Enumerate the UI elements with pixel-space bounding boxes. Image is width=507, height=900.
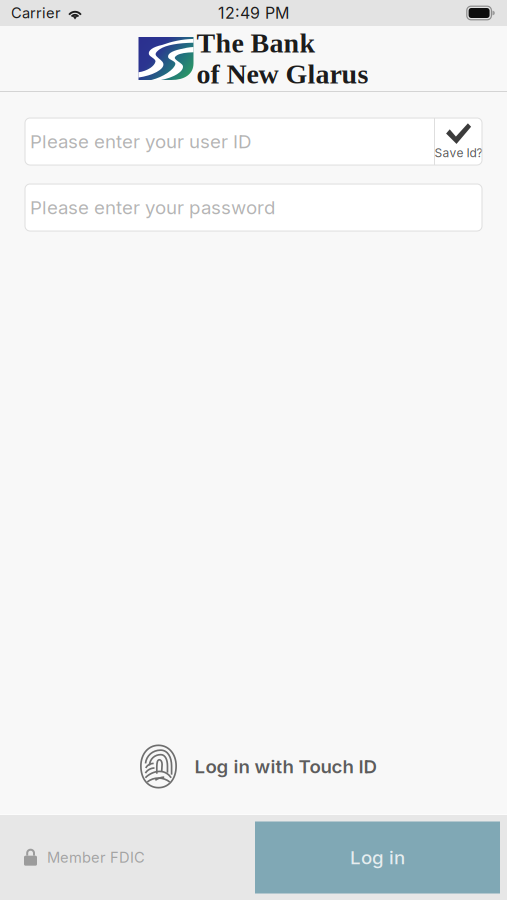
- staticText: Please enter your password: [30, 196, 275, 219]
- button[interactable]: Log in: [255, 821, 500, 893]
- staticText: of New Glarus: [196, 58, 368, 89]
- staticText: The Bank: [196, 27, 315, 58]
- staticText: 12:49 PM: [218, 3, 289, 23]
- button[interactable]: Log in with Touch ID: [130, 738, 376, 795]
- staticText: Save Id?: [434, 146, 482, 160]
- staticText: Log in: [350, 846, 405, 869]
- staticText: Please enter your user ID: [30, 130, 251, 153]
- staticText: Member FDIC: [47, 849, 145, 866]
- staticText: Log in with Touch ID: [194, 755, 376, 778]
- button[interactable]: Save Id?: [435, 118, 482, 165]
- staticText: Carrier: [11, 4, 61, 22]
